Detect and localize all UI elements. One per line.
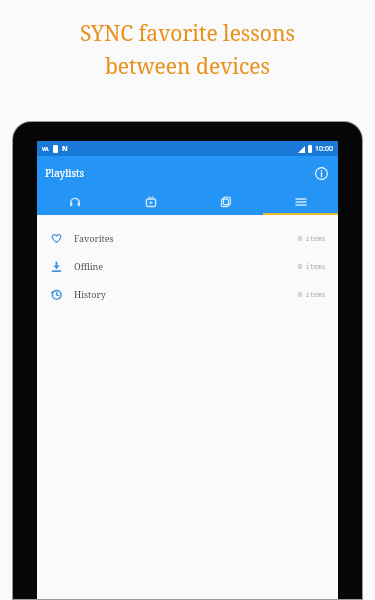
staticText: 10:00 — [315, 144, 333, 154]
button[interactable]: Info — [309, 161, 333, 185]
button[interactable]: Favorites — [37, 224, 338, 252]
button[interactable]: Playlists — [263, 189, 338, 215]
staticText: 0 items — [298, 262, 326, 271]
button[interactable]: Offline — [37, 252, 338, 280]
staticText: N — [62, 144, 68, 154]
staticText: SYNC favorite lessons — [18, 19, 357, 48]
staticText: VA — [42, 146, 49, 153]
button[interactable]: Audio — [37, 189, 113, 215]
staticText: Offline — [74, 260, 104, 272]
staticText: Playlists — [45, 166, 85, 180]
button[interactable]: History — [37, 280, 338, 308]
staticText: 0 items — [298, 290, 326, 299]
button[interactable]: Video — [113, 189, 188, 215]
staticText: 0 items — [298, 234, 326, 243]
button[interactable]: Books — [188, 189, 263, 215]
staticText: Favorites — [74, 232, 114, 244]
staticText: between devices — [18, 52, 357, 81]
staticText: History — [74, 288, 106, 300]
